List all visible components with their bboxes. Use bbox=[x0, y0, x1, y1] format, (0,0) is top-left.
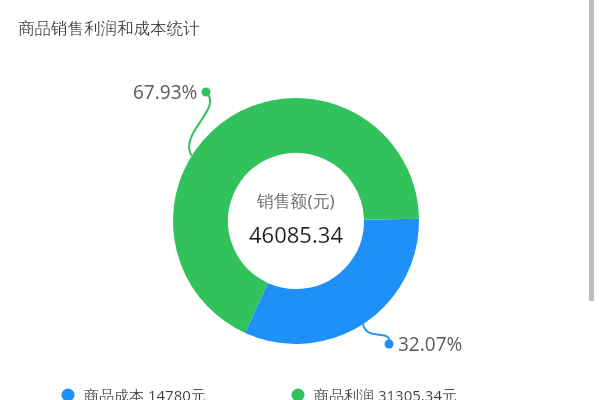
button[interactable]: 商品销售利润和成本统计饼图 bbox=[0, 0, 600, 400]
